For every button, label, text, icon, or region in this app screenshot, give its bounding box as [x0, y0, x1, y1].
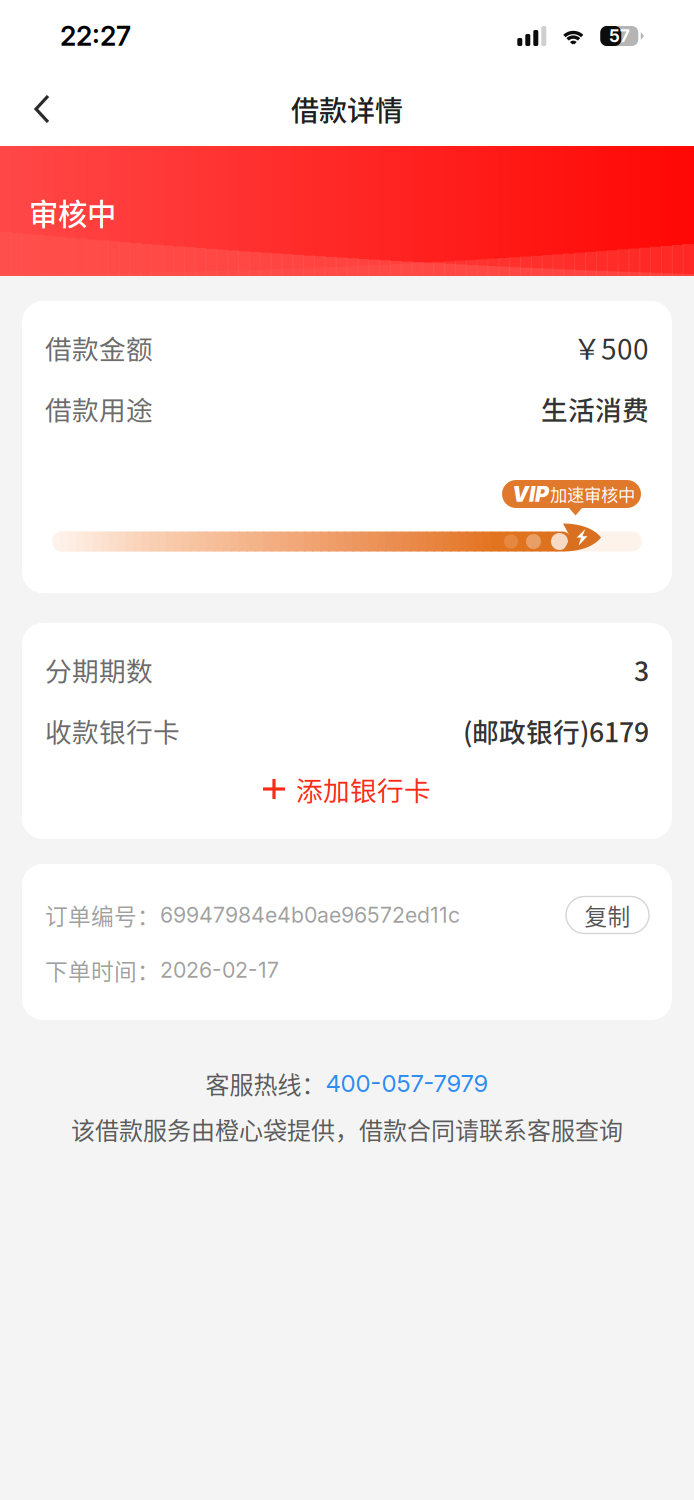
staticText: 借款详情 — [291, 89, 403, 129]
staticText: 借款用途 — [45, 389, 153, 428]
staticText: 复制 — [584, 899, 630, 931]
staticText: 69947984e4b0ae96572ed11c — [160, 902, 460, 928]
staticText: ￥500 — [573, 327, 649, 368]
staticText: VIP — [512, 481, 549, 507]
staticText: 2026-02-17 — [160, 957, 279, 983]
button[interactable]: 复制 — [566, 896, 649, 933]
staticText: 57 — [609, 25, 630, 46]
staticText: 400-057-7979 — [325, 1069, 488, 1098]
staticText: 客服热线： — [205, 1066, 325, 1101]
staticText: 审核中 — [29, 191, 116, 233]
staticText: (邮政银行)6179 — [463, 711, 649, 750]
staticText: 收款银行卡 — [45, 711, 180, 750]
staticText: 加速审核中 — [550, 481, 635, 507]
button[interactable]: Back — [14, 81, 70, 137]
staticText: 3 — [634, 650, 649, 689]
staticText: 22:27 — [60, 20, 131, 52]
staticText: 下单时间： — [45, 954, 160, 986]
staticText: 生活消费 — [541, 389, 649, 428]
button[interactable]: 400-057-7979 — [325, 1069, 488, 1098]
staticText: 添加银行卡 — [296, 770, 431, 808]
staticText: 借款金额 — [45, 328, 153, 367]
button[interactable]: 添加银行卡 — [45, 761, 649, 817]
staticText: 订单编号： — [45, 899, 160, 931]
staticText: 分期期数 — [45, 650, 153, 689]
staticText: 该借款服务由橙心袋提供，借款合同请联系客服查询 — [71, 1112, 623, 1147]
